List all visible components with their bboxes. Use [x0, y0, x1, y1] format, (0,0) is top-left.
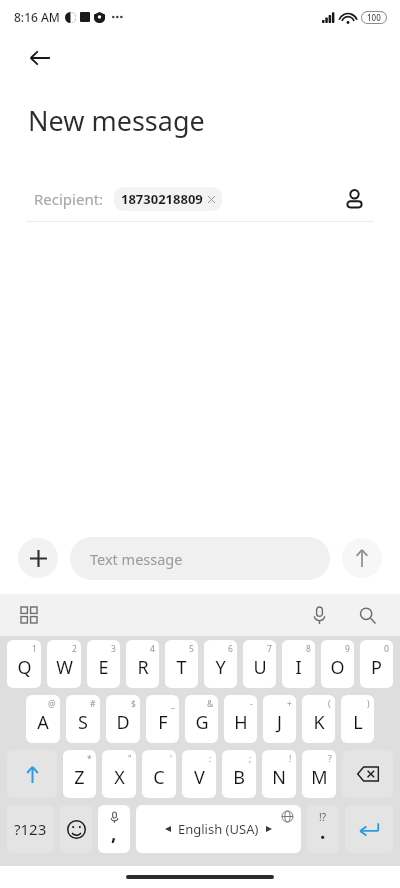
button[interactable]: @	[26, 695, 60, 743]
staticText: 0	[384, 643, 389, 655]
staticText: Z	[74, 765, 85, 790]
button[interactable]: Backspace	[342, 750, 393, 798]
button[interactable]: *	[63, 750, 96, 798]
button[interactable]: #	[66, 695, 100, 743]
staticText: 7	[267, 643, 272, 655]
staticText: 18730218809	[121, 190, 203, 208]
staticText: N	[272, 765, 286, 790]
button[interactable]: Shift	[7, 750, 57, 798]
button[interactable]: &	[185, 695, 218, 743]
staticText: 8	[306, 643, 311, 655]
staticText: 6	[228, 643, 233, 655]
button[interactable]: Search	[350, 598, 384, 632]
staticText: )	[367, 698, 370, 710]
button[interactable]: Period	[307, 805, 339, 853]
staticText: !?	[319, 810, 327, 824]
staticText: L	[353, 710, 363, 735]
staticText: *	[87, 753, 92, 765]
staticText: M	[311, 765, 328, 790]
staticText: K	[313, 710, 325, 735]
button[interactable]: Send	[342, 538, 382, 578]
button[interactable]: $	[106, 695, 140, 743]
staticText: English (USA)	[178, 820, 259, 838]
staticText: I	[295, 655, 302, 680]
button[interactable]: '	[142, 750, 176, 798]
staticText: @	[48, 698, 56, 710]
staticText: E	[98, 655, 109, 680]
staticText: S	[78, 710, 88, 735]
staticText: A	[37, 710, 49, 735]
button[interactable]: Back	[18, 36, 62, 80]
staticText: V	[194, 765, 205, 790]
button[interactable]: Voice input	[302, 598, 336, 632]
button[interactable]: ;	[222, 750, 256, 798]
button[interactable]: Choose contact	[334, 179, 374, 219]
button[interactable]: ?	[302, 750, 336, 798]
button[interactable]: 6	[204, 640, 237, 688]
staticText: Text message	[90, 549, 183, 569]
button[interactable]: Text message	[70, 537, 330, 580]
button[interactable]: 7	[243, 640, 276, 688]
staticText: -	[250, 698, 253, 710]
staticText: R	[137, 655, 149, 680]
button[interactable]: Enter	[345, 805, 393, 853]
staticText: W	[56, 655, 73, 680]
staticText: +	[287, 698, 292, 710]
staticText: '	[170, 753, 172, 765]
button[interactable]: "	[102, 750, 136, 798]
staticText: H	[234, 710, 248, 735]
staticText: :	[209, 753, 212, 765]
staticText: D	[116, 710, 130, 735]
staticText: $	[131, 698, 136, 710]
staticText: J	[277, 710, 282, 735]
button[interactable]: 3	[87, 640, 120, 688]
staticText: (	[328, 698, 331, 710]
button[interactable]: :	[182, 750, 216, 798]
staticText: &	[207, 698, 214, 710]
button[interactable]: Space, English (USA)	[136, 805, 301, 853]
button[interactable]: -	[224, 695, 257, 743]
staticText: ,	[111, 820, 117, 846]
staticText: 8:16 AM	[14, 9, 60, 25]
staticText: .	[320, 819, 326, 845]
staticText: #	[90, 698, 96, 710]
staticText: O	[330, 655, 345, 680]
button[interactable]: 18730218809	[114, 187, 222, 211]
staticText: 1	[32, 643, 37, 655]
staticText: 2	[72, 643, 77, 655]
staticText: 100	[367, 12, 381, 23]
staticText: X	[114, 765, 125, 790]
staticText: ;	[249, 753, 252, 765]
staticText: "	[128, 753, 132, 765]
button[interactable]: Keyboard tools	[12, 598, 46, 632]
button[interactable]: )	[341, 695, 374, 743]
staticText: 9	[345, 643, 350, 655]
button[interactable]: !	[262, 750, 296, 798]
staticText: C	[153, 765, 165, 790]
button[interactable]: 9	[321, 640, 354, 688]
staticText: _	[171, 698, 175, 710]
button[interactable]: 1	[7, 640, 41, 688]
staticText: 4	[150, 643, 155, 655]
staticText: Y	[215, 655, 226, 680]
button[interactable]: (	[302, 695, 335, 743]
staticText: 3	[111, 643, 116, 655]
button[interactable]: Add attachment	[18, 538, 58, 578]
button[interactable]: 2	[47, 640, 81, 688]
button[interactable]: Symbols	[7, 805, 54, 853]
button[interactable]: 8	[282, 640, 315, 688]
button[interactable]: 4	[126, 640, 159, 688]
button[interactable]: 0	[360, 640, 393, 688]
button[interactable]: Emoji	[60, 805, 92, 853]
staticText: New message	[28, 102, 205, 139]
staticText: G	[195, 710, 209, 735]
button[interactable]: Comma	[98, 805, 130, 853]
staticText: ?	[328, 753, 332, 765]
staticText: F	[158, 710, 168, 735]
staticText: ?123	[14, 819, 47, 839]
button[interactable]: 5	[165, 640, 198, 688]
staticText: U	[253, 655, 267, 680]
button[interactable]: +	[263, 695, 296, 743]
staticText: 5	[189, 643, 194, 655]
button[interactable]: _	[146, 695, 179, 743]
